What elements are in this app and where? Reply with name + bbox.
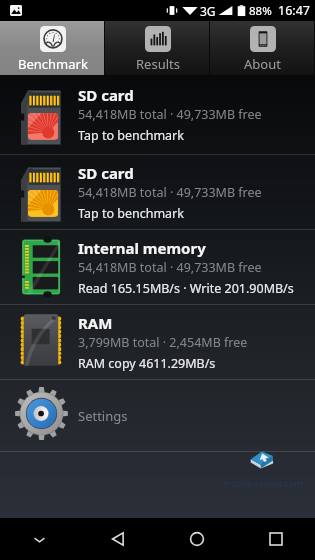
button[interactable]: RAM — [0, 305, 315, 379]
staticText: Internal memory — [78, 238, 206, 258]
staticText: 3,799MB total · 2,454MB free — [78, 334, 248, 351]
staticText: Read 165.15MB/s · Write 201.90MB/s — [78, 280, 294, 297]
button[interactable]: Benchmark — [0, 21, 105, 75]
staticText: mobile-review.com — [223, 477, 303, 489]
button[interactable]: Recents — [236, 518, 315, 560]
staticText: 16:47 — [278, 2, 310, 19]
staticText: Settings — [78, 407, 128, 425]
button[interactable]: SD card — [0, 75, 315, 154]
staticText: SD card — [78, 85, 134, 105]
button[interactable]: Home — [157, 518, 236, 560]
staticText: 54,418MB total · 49,733MB free — [78, 106, 262, 123]
staticText: Tap to benchmark — [78, 127, 184, 144]
staticText: About — [244, 55, 281, 73]
button[interactable]: Settings — [0, 380, 315, 451]
staticText: 88% — [249, 3, 272, 19]
staticText: 3G — [200, 3, 216, 19]
staticText: SD card — [78, 163, 134, 183]
staticText: Benchmark — [18, 55, 88, 73]
button[interactable]: SD card — [0, 155, 315, 229]
button[interactable]: Hide keyboard — [0, 518, 78, 560]
button[interactable]: About — [210, 21, 315, 75]
staticText: RAM copy 4611.29MB/s — [78, 355, 216, 372]
staticText: Tap to benchmark — [78, 205, 184, 222]
staticText: 54,418MB total · 49,733MB free — [78, 184, 262, 201]
staticText: Results — [136, 55, 180, 73]
staticText: RAM — [78, 313, 113, 333]
button[interactable]: Results — [105, 21, 210, 75]
button[interactable]: Back — [78, 518, 157, 560]
button[interactable]: Internal memory — [0, 230, 315, 304]
staticText: 54,418MB total · 49,733MB free — [78, 259, 262, 276]
